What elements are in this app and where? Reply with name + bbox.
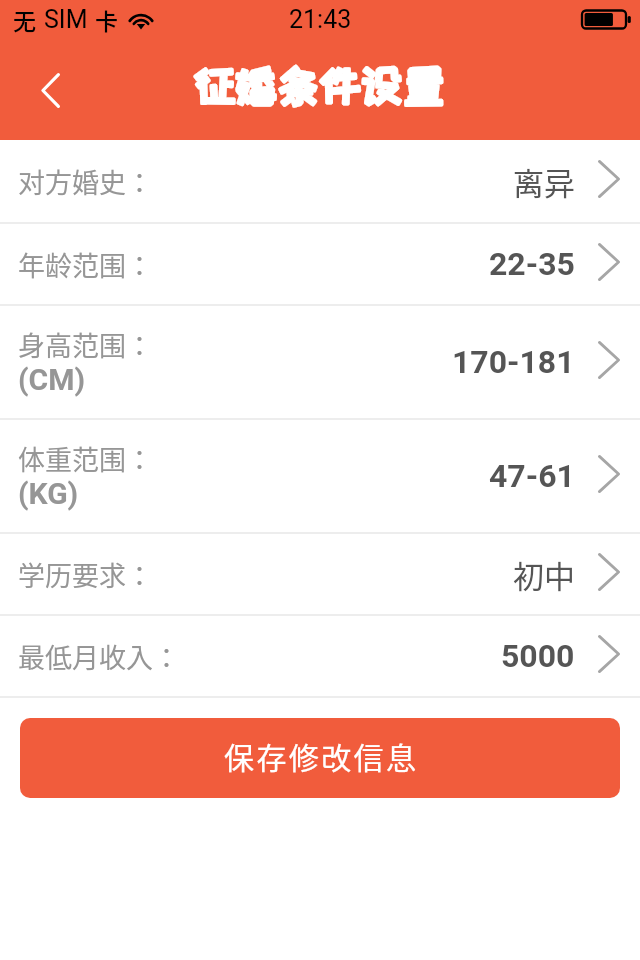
staticText: SIM <box>44 5 88 34</box>
staticText: 学历要求： <box>18 555 153 594</box>
button[interactable]: 对方婚史： <box>0 140 640 222</box>
staticText: (CM) <box>18 362 86 397</box>
button[interactable]: 保存修改信息 <box>20 718 620 798</box>
button[interactable]: 学历要求： <box>0 534 640 614</box>
staticText: 最低月收入： <box>18 637 180 676</box>
staticText: 21:43 <box>289 5 352 34</box>
staticText: 保存修改信息 <box>224 734 419 777</box>
button[interactable]: 最低月收入： <box>0 616 640 696</box>
button[interactable]: Back <box>22 62 78 118</box>
button[interactable]: 身高范围： <box>0 306 640 418</box>
staticText: 年龄范围： <box>18 245 153 284</box>
staticText: 5000 <box>501 637 575 675</box>
staticText: (KG) <box>18 476 79 511</box>
staticText: 47-61 <box>489 457 575 495</box>
staticText: 初中 <box>513 552 575 597</box>
staticText: 170-181 <box>452 343 575 381</box>
staticText: 无 <box>13 3 36 36</box>
staticText: 身高范围： <box>18 325 153 364</box>
staticText: 对方婚史： <box>18 162 153 201</box>
button[interactable]: 年龄范围： <box>0 224 640 304</box>
staticText: 征婚条件设置 <box>194 63 446 107</box>
button[interactable]: 体重范围： <box>0 420 640 532</box>
staticText: 卡 <box>95 3 118 36</box>
staticText: 体重范围： <box>18 439 153 478</box>
staticText: 离异 <box>513 159 575 204</box>
staticText: 征婚条件设置 <box>194 63 446 107</box>
staticText: 22-35 <box>489 245 575 283</box>
